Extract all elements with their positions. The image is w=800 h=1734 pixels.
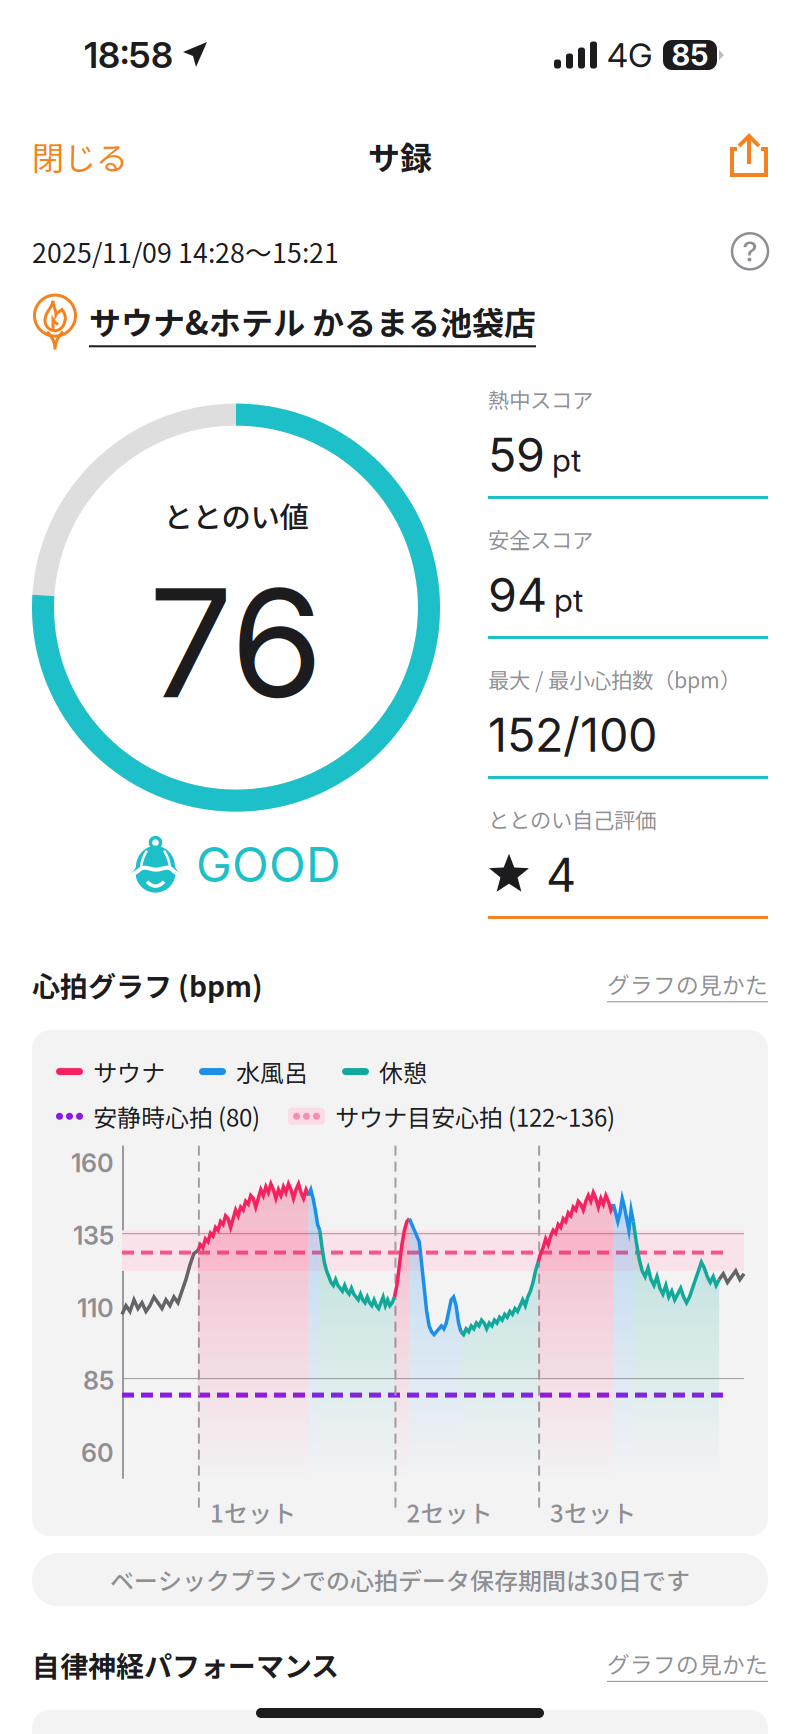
staticText: グラフの見かた (607, 967, 768, 1000)
staticText: 76 (148, 552, 323, 733)
staticText: ととのい値 (163, 494, 308, 536)
staticText: 85 (671, 37, 708, 73)
staticText: 休憩 (379, 1054, 427, 1089)
staticText: 18:58 (84, 33, 173, 77)
staticText: 160 (71, 1148, 114, 1178)
staticText: 2025/11/09 14:28〜15:21 (32, 232, 339, 271)
button[interactable]: Share (730, 133, 768, 179)
staticText: 4G (607, 35, 653, 75)
staticText: ベーシックプランでの心拍データ保存期間は30日です (110, 1562, 690, 1597)
staticText: 59 (488, 426, 545, 483)
staticText: 安静時心拍 (80) (93, 1099, 260, 1134)
button[interactable]: グラフの見かた (607, 1647, 768, 1682)
staticText: 閉じる (32, 133, 128, 179)
staticText: 自律神経パフォーマンス (32, 1644, 339, 1685)
staticText: GOOD (196, 836, 341, 894)
staticText: グラフの見かた (607, 1647, 768, 1680)
staticText: 1セット (210, 1495, 296, 1529)
staticText: 安全スコア (488, 524, 593, 554)
staticText: 心拍グラフ (bpm) (32, 965, 263, 1005)
staticText: 4 (546, 846, 576, 903)
staticText: 85 (83, 1365, 114, 1396)
staticText: 152/100 (488, 706, 657, 763)
button[interactable]: グラフの見かた (607, 967, 768, 1002)
staticText: pt (552, 441, 581, 479)
staticText: サウナ&ホテル かるまる池袋店 (89, 298, 536, 344)
staticText: ? (742, 234, 757, 268)
staticText: 2セット (406, 1495, 492, 1529)
staticText: 60 (81, 1437, 114, 1468)
staticText: 94 (488, 566, 547, 623)
staticText: サ録 (368, 133, 432, 179)
staticText: ととのい自己評価 (488, 804, 656, 834)
staticText: 3セット (550, 1495, 636, 1529)
staticText: サウナ (93, 1054, 165, 1089)
staticText: 最大 / 最小心拍数（bpm） (488, 664, 741, 694)
button[interactable]: サウナ&ホテル かるまる池袋店 (32, 293, 768, 353)
staticText: 熱中スコア (488, 384, 593, 414)
staticText: 水風呂 (236, 1054, 308, 1089)
button[interactable]: Help (732, 233, 768, 269)
staticText: サウナ目安心拍 (122~136) (335, 1099, 615, 1134)
staticText: 135 (73, 1220, 114, 1251)
staticText: pt (554, 581, 583, 619)
button[interactable]: 閉じる (32, 133, 128, 179)
staticText: 110 (77, 1293, 114, 1323)
